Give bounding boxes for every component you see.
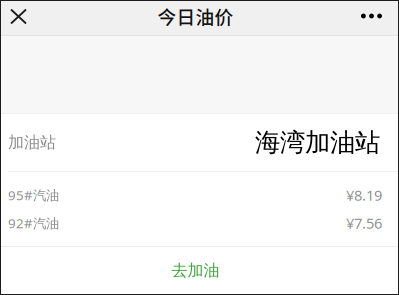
staticText: 海湾加油站 xyxy=(255,127,380,158)
staticText: ¥8.19 xyxy=(346,185,382,205)
staticText: ¥7.56 xyxy=(346,213,382,233)
button[interactable]: 去加油 xyxy=(0,247,399,294)
button[interactable]: More options xyxy=(343,0,399,35)
button[interactable]: Close xyxy=(0,0,45,35)
staticText: 92#汽油 xyxy=(8,214,59,232)
staticText: 今日油价 xyxy=(157,2,233,29)
staticText: 95#汽油 xyxy=(8,186,59,204)
staticText: 加油站 xyxy=(8,133,56,152)
staticText: 去加油 xyxy=(171,261,219,280)
